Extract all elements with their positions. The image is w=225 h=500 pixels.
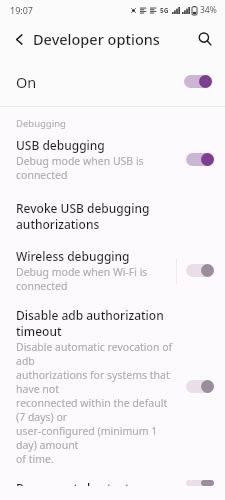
button[interactable]: Search	[191, 25, 219, 53]
staticText: Bug report shortcut	[16, 480, 130, 486]
button[interactable]: Disable adb authorization timeout	[0, 303, 225, 478]
button[interactable]: Revoke USB debugging authorizations	[0, 194, 225, 246]
button[interactable]: On	[0, 57, 225, 106]
staticText: Disable adb authorization timeout	[16, 307, 179, 339]
staticText: USB debugging	[16, 137, 105, 153]
staticText: On	[16, 72, 183, 92]
staticText: Wireless debugging	[16, 248, 130, 264]
staticText: Developer options	[33, 29, 160, 49]
button[interactable]: Toggle off	[185, 263, 215, 278]
staticText: 34%	[200, 4, 217, 16]
staticText: Debug mode when Wi-Fi is connected	[16, 265, 148, 293]
staticText: 5G	[160, 6, 169, 15]
button[interactable]: Bug report shortcut	[0, 478, 225, 500]
staticText: 19:07	[10, 4, 34, 16]
staticText: Debugging	[16, 117, 66, 130]
button[interactable]: USB debugging	[0, 133, 225, 194]
staticText: Revoke USB debugging authorizations	[16, 200, 179, 232]
button[interactable]: Toggle on	[185, 152, 215, 167]
button[interactable]: Toggle off	[185, 480, 215, 486]
staticText: Debug mode when USB is connected	[16, 154, 179, 182]
button[interactable]: Toggle on	[183, 74, 213, 89]
button[interactable]: Toggle off	[185, 379, 215, 394]
button[interactable]: Wireless debugging	[0, 246, 225, 303]
staticText: Disable automatic revocation of adb auth…	[16, 340, 179, 466]
button[interactable]: Back	[6, 26, 32, 52]
